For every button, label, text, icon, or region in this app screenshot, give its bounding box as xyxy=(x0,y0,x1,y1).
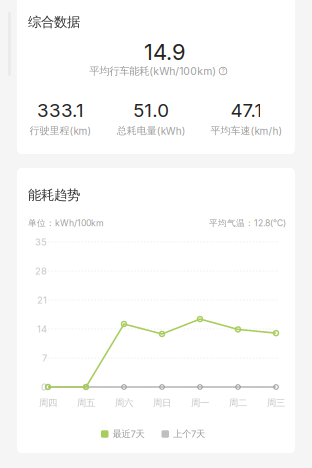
staticText: 平均车速(km/h) xyxy=(210,124,282,137)
staticText: 35 xyxy=(35,236,47,248)
staticText: 周三 xyxy=(267,397,285,409)
staticText: 333.1 xyxy=(37,99,84,121)
staticText: 7 xyxy=(42,352,47,364)
staticText: 0 xyxy=(41,381,47,393)
staticText: 21 xyxy=(37,294,47,306)
button[interactable]: 上个7天 xyxy=(161,428,205,440)
staticText: 综合数据 xyxy=(28,14,80,30)
staticText: 周四 xyxy=(39,397,57,409)
staticText: ? xyxy=(221,67,224,75)
staticText: 总耗电量(kWh) xyxy=(117,124,186,137)
staticText: 行驶里程(km) xyxy=(29,124,91,137)
staticText: 周六 xyxy=(115,397,133,409)
button[interactable]: 平均行车能耗说明 xyxy=(219,67,227,75)
staticText: 47.1 xyxy=(230,99,262,121)
staticText: 51.0 xyxy=(133,99,169,121)
staticText: 单位：kWh/100km xyxy=(28,217,104,228)
staticText: 14 xyxy=(37,323,47,335)
staticText: 周二 xyxy=(229,397,247,409)
staticText: 28 xyxy=(35,265,47,277)
staticText: 周日 xyxy=(153,397,171,409)
button[interactable]: 最近7天 xyxy=(101,428,144,440)
staticText: 能耗趋势 xyxy=(28,187,80,203)
staticText: 周五 xyxy=(77,397,95,409)
staticText: 平均行车能耗(kWh/100km) xyxy=(89,64,216,77)
staticText: 最近7天 xyxy=(112,428,144,440)
staticText: 平均气温：12.8(℃) xyxy=(209,217,286,228)
staticText: 周一 xyxy=(191,397,209,409)
staticText: 上个7天 xyxy=(173,428,205,440)
staticText: 14.9 xyxy=(144,39,186,65)
